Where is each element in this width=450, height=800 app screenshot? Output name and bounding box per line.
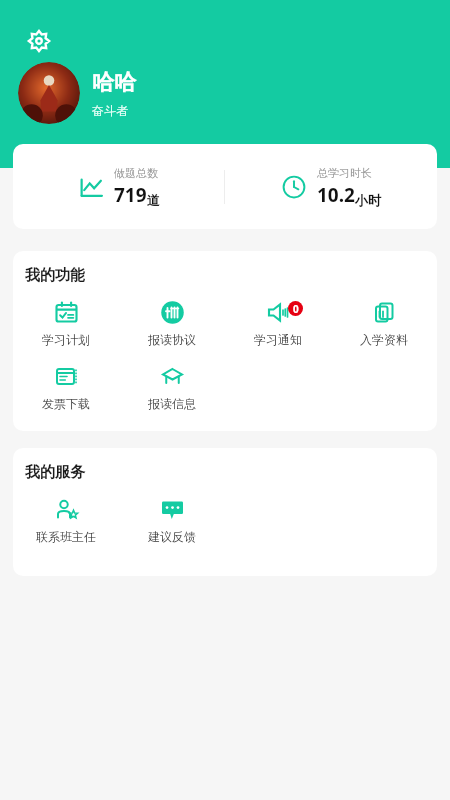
button[interactable]: 总学习时长	[225, 144, 437, 229]
button[interactable]: 做题总数	[13, 144, 224, 229]
button[interactable]: 报读信息	[119, 362, 225, 413]
button[interactable]: 哈哈	[18, 62, 136, 124]
staticText: 报读协议	[148, 332, 196, 347]
staticText: 报读信息	[148, 396, 196, 411]
button[interactable]: 0	[225, 298, 331, 349]
staticText: 我的功能	[25, 266, 85, 285]
button[interactable]: 发票下载	[13, 362, 119, 413]
staticText: 小时	[355, 192, 381, 208]
button[interactable]: 学习计划	[13, 298, 119, 349]
button[interactable]: Settings	[26, 28, 52, 54]
staticText: 做题总数	[114, 166, 158, 180]
staticText: 哈哈	[92, 69, 136, 97]
staticText: 入学资料	[360, 332, 408, 347]
staticText: 总学习时长	[317, 166, 372, 180]
staticText: 建议反馈	[148, 529, 196, 544]
button[interactable]: 联系班主任	[13, 495, 119, 546]
staticText: 10.2	[317, 182, 355, 208]
staticText: 奋斗者	[92, 103, 128, 118]
staticText: 我的服务	[25, 463, 85, 482]
staticText: 发票下载	[42, 396, 90, 411]
staticText: 0	[293, 302, 299, 316]
button[interactable]: 报读协议	[119, 298, 225, 349]
staticText: 道	[147, 192, 160, 208]
staticText: 学习计划	[42, 332, 90, 347]
staticText: 联系班主任	[36, 529, 96, 544]
staticText: 719	[114, 182, 147, 208]
button[interactable]: 建议反馈	[119, 495, 225, 546]
staticText: 学习通知	[254, 332, 302, 347]
button[interactable]: 入学资料	[331, 298, 437, 349]
